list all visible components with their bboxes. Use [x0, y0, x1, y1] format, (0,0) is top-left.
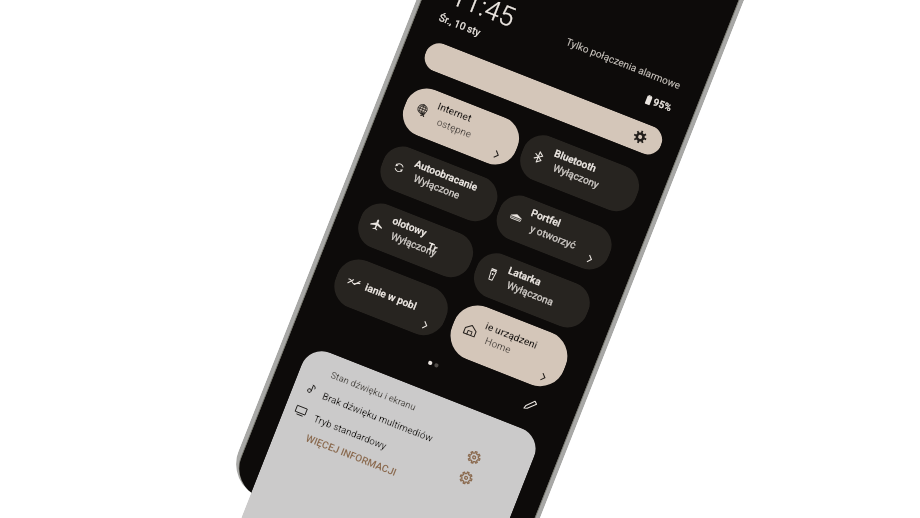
staticText: Autoobracanie	[413, 158, 480, 194]
staticText: Wyłączony	[551, 162, 601, 191]
staticText: olotowy	[391, 215, 428, 239]
other: Flashlight	[484, 266, 501, 283]
button[interactable]: Brightness	[420, 39, 666, 159]
staticText: Wyłączony	[389, 230, 439, 259]
staticText: ie urządzeni	[483, 320, 539, 352]
button[interactable]: Auto rotate	[374, 140, 504, 227]
staticText: Wyłączone	[411, 173, 461, 202]
other: Bluetooth	[530, 149, 547, 166]
other: Display mode	[294, 404, 308, 418]
other: Display settings	[632, 128, 649, 145]
button[interactable]: Airplane mode	[352, 197, 479, 283]
button[interactable]: Device controls	[443, 298, 575, 394]
other: Edit tiles	[523, 397, 539, 413]
other: Display settings	[458, 469, 475, 486]
button[interactable]: Flashlight	[468, 247, 596, 334]
other: Wallet	[508, 209, 525, 225]
staticText: ianie w pobl	[363, 282, 419, 313]
staticText: Tylko połączenia alarmowe	[564, 36, 682, 92]
staticText: 95%	[651, 96, 673, 114]
button[interactable]: Sound and display status	[234, 345, 542, 518]
staticText: Brak dźwięku multimediów	[320, 390, 435, 445]
staticText: Latarka	[506, 265, 543, 289]
other: Device controls	[462, 322, 479, 339]
button[interactable]: Wallet	[490, 189, 618, 276]
other: Airplane mode	[368, 216, 385, 233]
staticText: Wyłączona	[505, 279, 555, 308]
other: Sound	[304, 382, 318, 396]
staticText: Śr., 10 sty	[437, 12, 482, 39]
staticText: Internet	[436, 100, 474, 125]
staticText: Tr	[426, 241, 439, 255]
staticText: Portfel	[529, 207, 562, 230]
other: Internet	[414, 102, 431, 119]
button[interactable]: Nearby share	[327, 253, 455, 342]
staticText: y otworzyć	[528, 223, 578, 252]
other: Auto rotate	[391, 159, 408, 176]
staticText: ostępne	[435, 116, 474, 141]
other: Nearby share	[346, 274, 362, 291]
staticText: WIĘCEJ INFORMACJI	[304, 432, 398, 479]
staticText: Home	[483, 335, 513, 357]
staticText: Tryb standardowy	[312, 413, 389, 452]
staticText: Stan dźwięku i ekranu	[329, 369, 418, 413]
staticText: Bluetooth	[552, 148, 599, 175]
button[interactable]: Internet	[396, 82, 526, 171]
other: Battery 95 percent	[642, 93, 655, 106]
staticText: 11:45	[447, 0, 520, 34]
button[interactable]: Bluetooth	[514, 129, 645, 218]
other: Sound settings	[466, 449, 483, 466]
